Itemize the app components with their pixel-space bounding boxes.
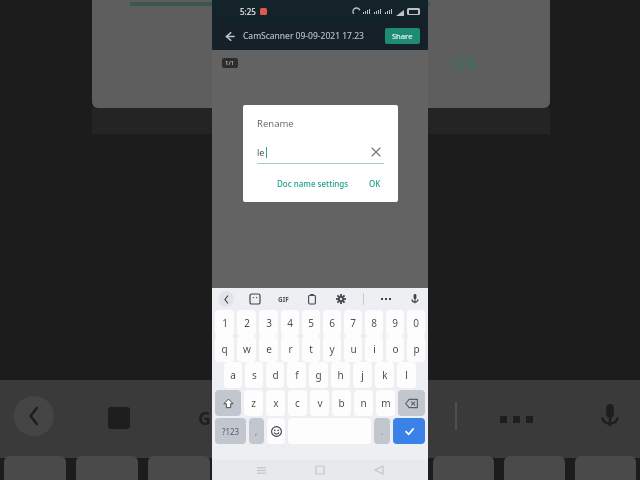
- button[interactable]: le: [257, 144, 384, 160]
- staticText: .: [381, 426, 384, 437]
- button[interactable]: Shift: [215, 390, 241, 416]
- button[interactable]: ?123: [215, 418, 246, 444]
- button[interactable]: 4: [281, 310, 299, 336]
- staticText: h: [337, 368, 344, 382]
- staticText: g: [315, 368, 322, 382]
- staticText: v: [317, 396, 323, 410]
- button[interactable]: 3: [259, 310, 278, 336]
- button[interactable]: b: [332, 390, 351, 416]
- button[interactable]: c: [288, 390, 307, 416]
- staticText: f: [295, 368, 299, 382]
- staticText: j: [361, 368, 364, 382]
- button[interactable]: Recent apps: [251, 460, 271, 480]
- staticText: u: [350, 342, 357, 356]
- staticText: 8: [371, 316, 377, 330]
- staticText: 4: [287, 316, 293, 330]
- button[interactable]: a: [224, 362, 242, 388]
- button[interactable]: p: [407, 336, 425, 362]
- staticText: CamScanner 09-09-2021 17.23: [243, 30, 364, 42]
- button[interactable]: 7: [344, 310, 362, 336]
- staticText: 9: [392, 316, 398, 330]
- staticText: l: [405, 368, 408, 382]
- button[interactable]: 9: [386, 310, 404, 336]
- button[interactable]: o: [386, 336, 404, 362]
- staticText: p: [413, 342, 420, 356]
- staticText: ,: [255, 426, 258, 437]
- staticText: 6: [329, 316, 335, 330]
- staticText: x: [273, 396, 279, 410]
- button[interactable]: e: [259, 336, 278, 362]
- staticText: OK: [451, 50, 478, 76]
- staticText: c: [295, 396, 300, 410]
- staticText: le: [257, 146, 265, 158]
- button[interactable]: Backspace: [398, 390, 425, 416]
- button[interactable]: .: [374, 418, 390, 444]
- staticText: n: [360, 396, 367, 410]
- staticText: 1: [222, 316, 228, 330]
- button[interactable]: Clear text: [368, 144, 384, 160]
- button[interactable]: r: [281, 336, 299, 362]
- button[interactable]: 1: [215, 310, 234, 336]
- button[interactable]: h: [331, 362, 350, 388]
- button[interactable]: ,: [249, 418, 264, 444]
- staticText: 3: [266, 316, 272, 330]
- staticText: t: [309, 342, 313, 356]
- button[interactable]: x: [266, 390, 285, 416]
- button[interactable]: j: [353, 362, 372, 388]
- button[interactable]: Emoji: [267, 418, 285, 444]
- staticText: 5: [308, 316, 314, 330]
- button[interactable]: Enter: [393, 418, 425, 444]
- button[interactable]: 0: [407, 310, 425, 336]
- button[interactable]: Back: [220, 27, 238, 45]
- staticText: Doc name settings: [277, 178, 349, 189]
- button[interactable]: t: [302, 336, 320, 362]
- staticText: GIF: [278, 295, 289, 304]
- button[interactable]: v: [310, 390, 329, 416]
- button[interactable]: z: [244, 390, 263, 416]
- button[interactable]: Voice input: [408, 292, 422, 306]
- staticText: o: [392, 342, 399, 356]
- button[interactable]: Share: [385, 28, 420, 44]
- button[interactable]: Doc name settings: [272, 175, 354, 192]
- button[interactable]: l: [397, 362, 416, 388]
- button[interactable]: OK: [364, 175, 386, 192]
- button[interactable]: i: [365, 336, 383, 362]
- staticText: q: [221, 342, 228, 356]
- staticText: 5:25: [240, 6, 256, 17]
- button[interactable]: 2: [237, 310, 256, 336]
- button[interactable]: f: [287, 362, 306, 388]
- button[interactable]: Clipboard: [305, 292, 319, 306]
- button[interactable]: More options: [379, 296, 393, 302]
- staticText: G: [198, 406, 212, 431]
- button[interactable]: y: [323, 336, 341, 362]
- button[interactable]: Stickers: [248, 292, 262, 306]
- button[interactable]: 8: [365, 310, 383, 336]
- button[interactable]: k: [375, 362, 394, 388]
- staticText: 2: [244, 316, 250, 330]
- button[interactable]: 6: [323, 310, 341, 336]
- staticText: m: [381, 396, 391, 410]
- staticText: OK: [369, 178, 381, 189]
- button[interactable]: s: [245, 362, 263, 388]
- staticText: Rename: [257, 117, 294, 130]
- staticText: Share: [392, 31, 413, 41]
- button[interactable]: n: [354, 390, 373, 416]
- button[interactable]: Home: [310, 460, 330, 480]
- staticText: y: [329, 342, 335, 356]
- button[interactable]: GIF: [276, 293, 291, 306]
- button[interactable]: Settings: [334, 292, 348, 306]
- button[interactable]: Close toolbar: [218, 291, 234, 307]
- button[interactable]: w: [237, 336, 256, 362]
- staticText: d: [272, 368, 279, 382]
- staticText: r: [288, 342, 293, 356]
- button[interactable]: u: [344, 336, 362, 362]
- staticText: 0: [413, 316, 419, 330]
- staticText: b: [338, 396, 345, 410]
- button[interactable]: Back: [369, 460, 389, 480]
- button[interactable]: 5: [302, 310, 320, 336]
- button[interactable]: q: [215, 336, 234, 362]
- button[interactable]: g: [309, 362, 328, 388]
- button[interactable]: m: [376, 390, 395, 416]
- button[interactable]: d: [266, 362, 284, 388]
